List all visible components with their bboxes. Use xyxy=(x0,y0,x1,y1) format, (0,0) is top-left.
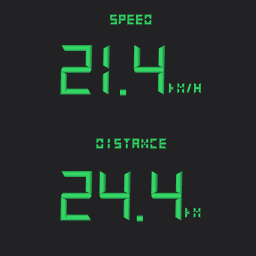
button[interactable]: Speed and distance readout xyxy=(0,0,256,256)
